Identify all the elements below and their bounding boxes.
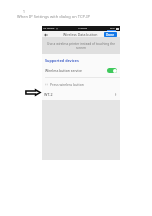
button[interactable]: Done [104,32,117,37]
staticText: No Service [43,27,55,30]
button[interactable]: WT-2 [42,90,120,98]
staticText: Use a wireless printer instead of touchi… [43,42,119,50]
staticText: Wireless Data button [63,32,98,37]
button[interactable]: Supported devices [42,55,120,66]
staticText: Wireless button service [45,68,82,73]
button[interactable]: Back [43,32,48,37]
staticText: WT-2 [44,92,53,97]
staticText: 92% [110,27,115,30]
staticText: Supported devices [45,58,79,63]
staticText: Press wireless button [50,82,84,87]
staticText: 1 [23,9,25,14]
staticText: Done [106,33,115,37]
staticText: 17:52:03 [78,27,88,30]
button[interactable]: Wireless button service [42,66,120,74]
button[interactable]: Press wireless button [42,80,120,88]
staticText: When IP Settings with dialog on TCP-IP [17,14,90,19]
